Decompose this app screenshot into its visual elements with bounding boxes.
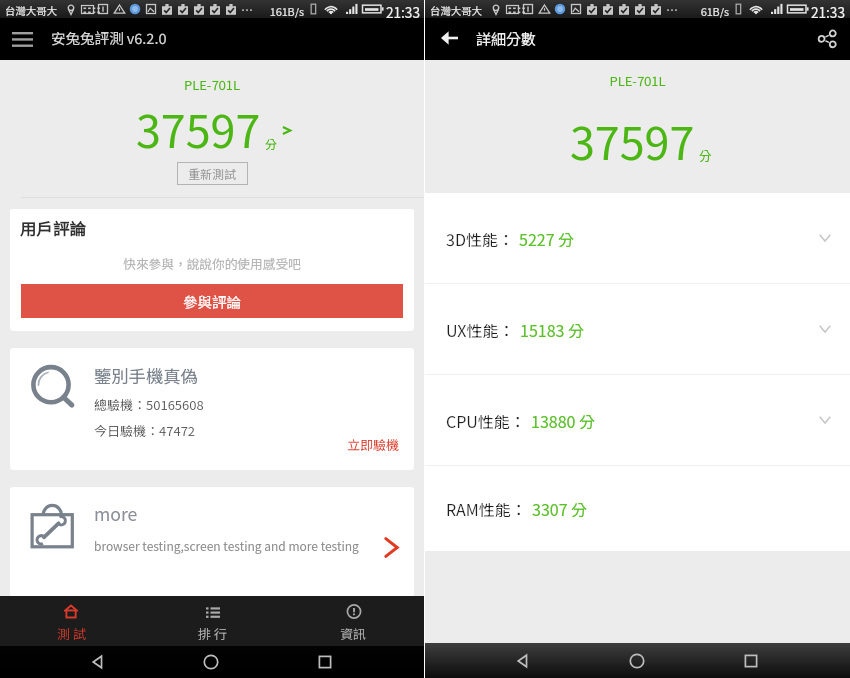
staticText: 5227 分	[519, 227, 575, 250]
button[interactable]: Back	[83, 647, 113, 677]
staticText: 參與評論	[183, 291, 241, 312]
staticText: browser testing,screen testing and more …	[94, 537, 359, 554]
staticText: 安兔兔評測 v6.2.0	[51, 27, 167, 48]
button[interactable]: 重新測試	[177, 162, 248, 185]
staticText: 37597	[136, 96, 261, 161]
staticText: CPU性能：	[446, 409, 526, 432]
staticText: 37597	[570, 108, 695, 173]
staticText: 15183 分	[520, 318, 584, 341]
staticText: 排 行	[198, 624, 227, 643]
button[interactable]: Menu	[0, 18, 44, 60]
button[interactable]: CPU性能：	[425, 375, 850, 465]
staticText: 3307 分	[532, 497, 588, 520]
button[interactable]: Back	[508, 646, 538, 676]
button[interactable]: Back	[428, 17, 470, 59]
button[interactable]: 測 試	[0, 596, 142, 646]
button[interactable]: Home	[622, 646, 652, 676]
staticText: 今日驗機：47472	[94, 421, 196, 440]
button[interactable]: Share	[806, 17, 848, 59]
staticText: 台灣大哥大	[5, 3, 57, 18]
staticText: UX性能：	[446, 318, 515, 341]
staticText: 161B/s	[258, 3, 304, 19]
staticText: 快來參與，說說你的使用感受吧	[10, 254, 414, 272]
staticText: 21:33	[811, 2, 845, 20]
button[interactable]: RAM性能：	[425, 466, 850, 551]
staticText: 總驗機：50165608	[94, 395, 204, 414]
staticText: …	[666, 1, 679, 18]
staticText: 鑒別手機真偽	[94, 363, 198, 388]
staticText: 資訊	[340, 624, 367, 643]
staticText: 21:33	[386, 2, 420, 20]
staticText: 3D性能：	[446, 227, 514, 250]
button[interactable]: Recents	[736, 646, 766, 676]
staticText: 詳細分數	[476, 28, 537, 50]
staticText: 用戶評論	[20, 216, 86, 240]
staticText: 測 試	[57, 624, 86, 643]
staticText: 61B/s	[683, 3, 729, 19]
button[interactable]: Recents	[310, 647, 340, 677]
staticText: 分	[699, 146, 712, 164]
staticText: 13880 分	[531, 409, 595, 432]
button[interactable]: 資訊	[283, 596, 424, 646]
staticText: RAM性能：	[446, 497, 527, 520]
button[interactable]: Home	[196, 647, 226, 677]
button[interactable]: 參與評論	[21, 284, 403, 318]
staticText: 台灣大哥大	[430, 3, 482, 18]
staticText: PLE-701L	[425, 71, 850, 90]
staticText: …	[241, 1, 254, 18]
staticText: PLE-701L	[0, 75, 424, 94]
button[interactable]: UX性能：	[425, 284, 850, 374]
staticText: 重新測試	[188, 165, 237, 182]
staticText: 分	[265, 135, 278, 152]
staticText: more	[94, 501, 138, 526]
button[interactable]: 立即驗機	[347, 435, 414, 454]
button[interactable]: 排 行	[142, 596, 283, 646]
button[interactable]: 3D性能：	[425, 193, 850, 283]
